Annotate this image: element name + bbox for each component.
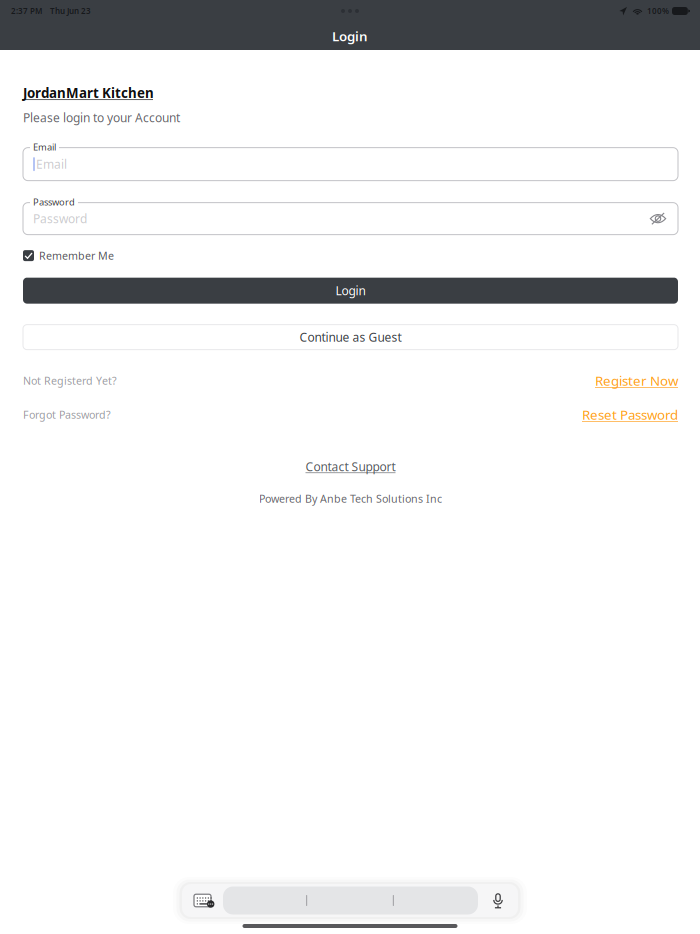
- button[interactable]: Dictate: [478, 884, 518, 917]
- button[interactable]: Contact Support: [23, 459, 678, 475]
- button[interactable]: Reset Password: [582, 406, 678, 423]
- staticText: 100%: [647, 6, 669, 16]
- staticText: Login: [332, 27, 368, 45]
- staticText: Login: [335, 283, 365, 299]
- staticText: JordanMart Kitchen: [23, 84, 154, 102]
- staticText: Remember Me: [39, 249, 114, 263]
- staticText: Contact Support: [305, 459, 395, 475]
- button[interactable]: Hide keyboard: [182, 884, 223, 917]
- button[interactable]: Register Now: [595, 372, 678, 389]
- button[interactable]: Continue as Guest: [23, 325, 678, 350]
- staticText: Reset Password: [582, 406, 678, 423]
- staticText: Please login to your Account: [23, 110, 180, 126]
- staticText: Register Now: [595, 372, 678, 389]
- staticText: Continue as Guest: [299, 329, 401, 345]
- staticText: Powered By Anbe Tech Solutions Inc: [259, 492, 442, 506]
- staticText: Thu Jun 23: [50, 6, 91, 16]
- staticText: Email: [36, 156, 67, 172]
- staticText: 2:37 PM: [11, 6, 42, 16]
- button[interactable]: Remember Me: [23, 249, 114, 263]
- staticText: Forgot Password?: [23, 408, 111, 422]
- staticText: Password: [33, 196, 75, 208]
- staticText: Not Registerd Yet?: [23, 374, 117, 388]
- staticText: Password: [33, 211, 87, 227]
- button[interactable]: Login: [23, 278, 678, 304]
- staticText: Email: [33, 141, 56, 153]
